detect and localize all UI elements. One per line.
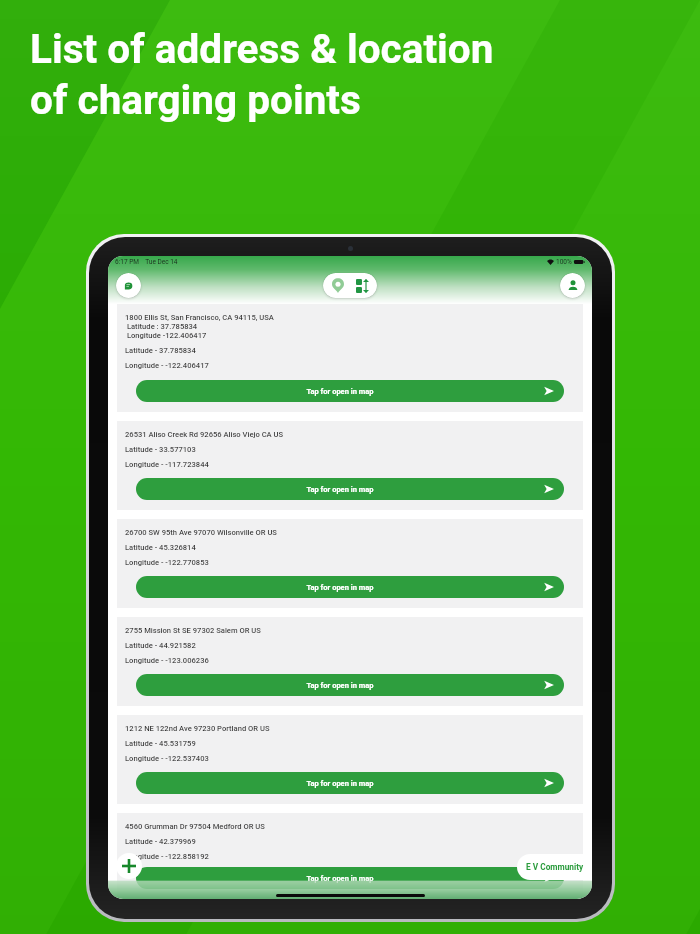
staticText: Latitude - 33.577103 — [125, 445, 196, 454]
staticText: 6:17 PM Tue Dec 14 — [115, 258, 178, 266]
button[interactable]: Tap for open in map — [136, 478, 564, 500]
staticText: Longitude - -117.723844 — [125, 460, 209, 469]
staticText: Tap for open in map — [136, 681, 544, 690]
staticText: Tap for open in map — [136, 485, 544, 494]
button[interactable]: Add charging point — [116, 853, 142, 879]
button[interactable]: 26700 SW 95th Ave 97070 Wilsonville OR U… — [117, 519, 583, 608]
staticText: 2755 Mission St SE 97302 Salem OR US — [125, 626, 261, 635]
button[interactable]: Tap for open in map — [136, 674, 564, 696]
staticText: Latitude - 45.531759 — [125, 739, 196, 748]
staticText: 26531 Aliso Creek Rd 92656 Aliso Viejo C… — [125, 430, 284, 439]
button[interactable]: 26531 Aliso Creek Rd 92656 Aliso Viejo C… — [117, 421, 583, 510]
staticText: Longitude - -122.858192 — [125, 852, 209, 861]
button[interactable]: Tap for open in map — [136, 576, 564, 598]
staticText: 100% — [556, 258, 572, 266]
staticText: 1800 Ellis St, San Francisco, CA 94115, … — [125, 313, 274, 322]
button[interactable]: Filter and sort — [323, 273, 377, 298]
button[interactable]: E V Community — [517, 854, 592, 880]
staticText: Tap for open in map — [136, 387, 544, 396]
button[interactable]: Tap for open in map — [136, 772, 564, 794]
button[interactable]: Tap for open in map — [136, 867, 564, 889]
staticText: Latitude : 37.785834 — [125, 322, 198, 331]
button[interactable]: 1212 NE 122nd Ave 97230 Portland OR US — [117, 715, 583, 804]
staticText: Latitude - 42.379969 — [125, 837, 196, 846]
button[interactable]: Messages — [116, 273, 141, 298]
staticText: Longitude - -123.006236 — [125, 656, 209, 665]
staticText: Latitude - 37.785834 — [125, 346, 196, 355]
staticText: Longitude - -122.537403 — [125, 754, 209, 763]
staticText: Tap for open in map — [136, 583, 544, 592]
staticText: Latitude - 45.326814 — [125, 543, 196, 552]
button[interactable]: Profile — [560, 273, 585, 298]
staticText: Latitude - 44.921582 — [125, 641, 196, 650]
staticText: Longitude - -122.770853 — [125, 558, 209, 567]
staticText: 26700 SW 95th Ave 97070 Wilsonville OR U… — [125, 528, 277, 537]
button[interactable]: 4560 Grumman Dr 97504 Medford OR US — [117, 813, 583, 899]
staticText: Longitude - -122.406417 — [125, 361, 209, 370]
staticText: Tap for open in map — [136, 779, 544, 788]
staticText: Tap for open in map — [136, 874, 544, 883]
button[interactable]: 1800 Ellis St, San Francisco, CA 94115, … — [117, 304, 583, 412]
staticText: List of address & location of charging p… — [30, 25, 494, 124]
staticText: 1212 NE 122nd Ave 97230 Portland OR US — [125, 724, 270, 733]
button[interactable]: Tap for open in map — [136, 380, 564, 402]
staticText: E V Community — [526, 862, 584, 872]
staticText: Longitude -122.406417 — [125, 331, 207, 340]
button[interactable]: 2755 Mission St SE 97302 Salem OR US — [117, 617, 583, 706]
staticText: 4560 Grumman Dr 97504 Medford OR US — [125, 822, 265, 831]
